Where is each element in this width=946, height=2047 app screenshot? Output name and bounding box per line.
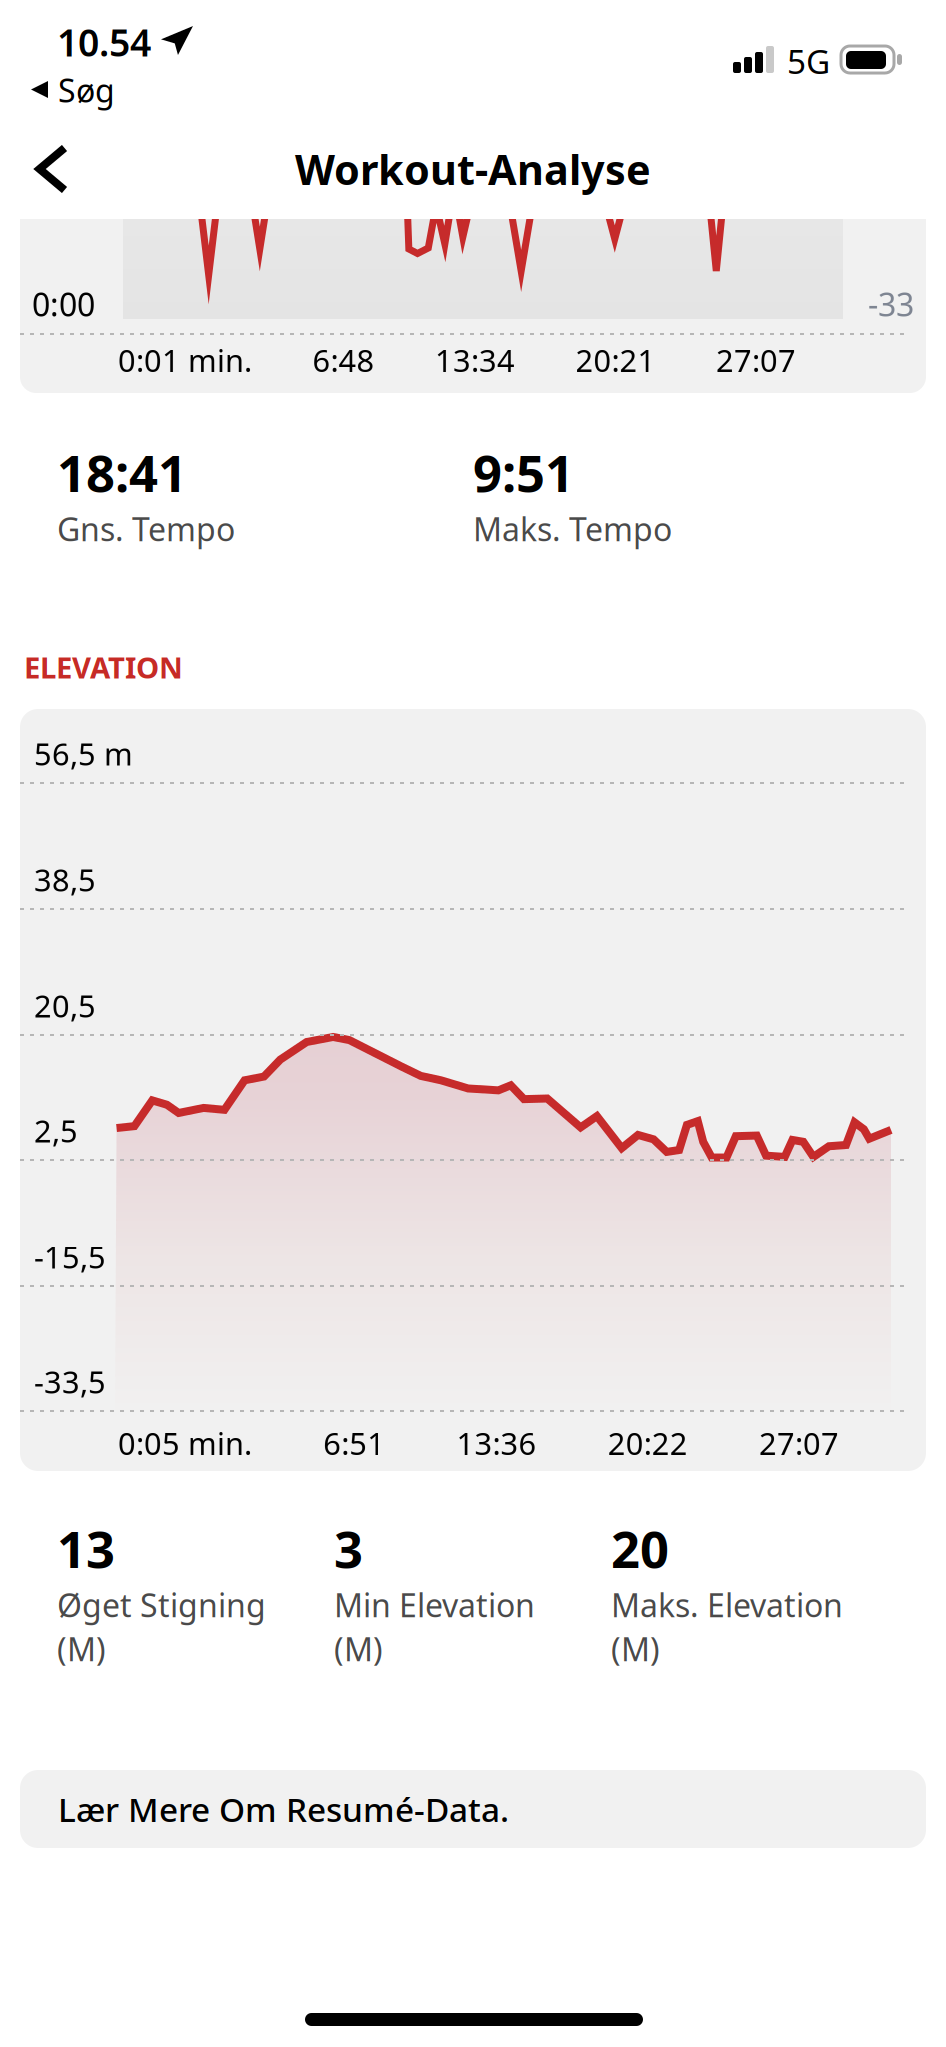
- staticText: 6:48: [312, 340, 374, 380]
- staticText: 56,5 m: [34, 733, 133, 774]
- staticText: -33: [868, 283, 914, 325]
- staticText: 9:51: [473, 439, 574, 506]
- staticText: 3: [334, 1515, 363, 1582]
- staticText: ELEVATION: [24, 647, 183, 686]
- button[interactable]: Lær Mere Om Resumé-Data.: [20, 1770, 926, 1848]
- staticText: 10.54: [57, 17, 151, 67]
- staticText: 5G: [787, 39, 830, 83]
- staticText: 20,5: [34, 985, 96, 1026]
- staticText: 38,5: [34, 859, 96, 900]
- staticText: 18:41: [57, 439, 187, 506]
- staticText: (M): [334, 1627, 383, 1670]
- staticText: (M): [57, 1627, 106, 1670]
- staticText: 13: [57, 1515, 115, 1582]
- button[interactable]: Back: [0, 128, 104, 210]
- staticText: Gns. Tempo: [57, 507, 235, 550]
- staticText: Søg: [58, 69, 115, 111]
- staticText: 0:01 min.: [118, 340, 252, 380]
- staticText: 2,5: [34, 1110, 78, 1151]
- button[interactable]: Søg: [0, 68, 200, 112]
- staticText: 20:22: [608, 1423, 688, 1463]
- staticText: 13:34: [435, 340, 515, 380]
- staticText: Min Elevation: [334, 1583, 535, 1626]
- staticText: Øget Stigning: [57, 1583, 266, 1626]
- staticText: 27:07: [759, 1423, 839, 1463]
- staticText: 27:07: [716, 340, 796, 380]
- staticText: 0:05 min.: [118, 1423, 252, 1463]
- staticText: 6:51: [323, 1423, 385, 1463]
- staticText: 13:36: [456, 1423, 536, 1463]
- staticText: Maks. Tempo: [473, 507, 672, 550]
- staticText: Lær Mere Om Resumé-Data.: [58, 1787, 509, 1831]
- staticText: Maks. Elevation: [611, 1583, 843, 1626]
- staticText: 0:00: [32, 283, 95, 325]
- staticText: 20: [611, 1515, 669, 1582]
- staticText: -33,5: [34, 1361, 106, 1402]
- staticText: Workout-Analyse: [295, 142, 651, 196]
- staticText: (M): [611, 1627, 660, 1670]
- staticText: 20:21: [575, 340, 655, 380]
- staticText: -15,5: [34, 1236, 106, 1277]
